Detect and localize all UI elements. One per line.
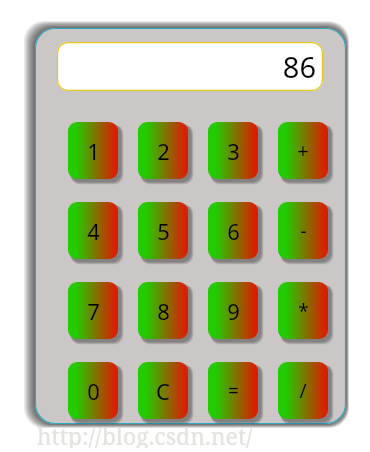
staticText: 7	[87, 296, 100, 326]
button[interactable]: C	[138, 362, 188, 419]
staticText: 2	[157, 136, 170, 166]
button[interactable]: 7	[68, 282, 118, 339]
button[interactable]: 4	[68, 202, 118, 259]
button[interactable]: 2	[138, 122, 188, 179]
staticText: 8	[157, 296, 170, 326]
button[interactable]: +	[278, 122, 328, 179]
staticText: 4	[87, 216, 100, 246]
staticText: 86	[282, 47, 316, 86]
staticText: *	[298, 298, 309, 324]
button[interactable]: 1	[68, 122, 118, 179]
staticText: 5	[157, 216, 170, 246]
button[interactable]: 9	[208, 282, 258, 339]
button[interactable]: -	[278, 202, 328, 259]
staticText: 6	[227, 216, 240, 246]
staticText: http://blog.csdn.net/qq_36009964	[37, 420, 347, 448]
button[interactable]: 8	[138, 282, 188, 339]
button[interactable]: 0	[68, 362, 118, 419]
staticText: /	[299, 378, 307, 404]
staticText: 0	[87, 376, 100, 406]
button[interactable]: /	[278, 362, 328, 419]
staticText: =	[228, 378, 239, 404]
button[interactable]: 5	[138, 202, 188, 259]
staticText: 3	[227, 136, 240, 166]
button[interactable]: 86	[57, 42, 323, 91]
staticText: -	[300, 218, 307, 244]
staticText: 1	[87, 136, 100, 166]
staticText: 9	[227, 296, 240, 326]
staticText: C	[156, 376, 170, 406]
button[interactable]: =	[208, 362, 258, 419]
button[interactable]: 3	[208, 122, 258, 179]
button[interactable]: *	[278, 282, 328, 339]
button[interactable]: 6	[208, 202, 258, 259]
staticText: +	[297, 137, 309, 164]
